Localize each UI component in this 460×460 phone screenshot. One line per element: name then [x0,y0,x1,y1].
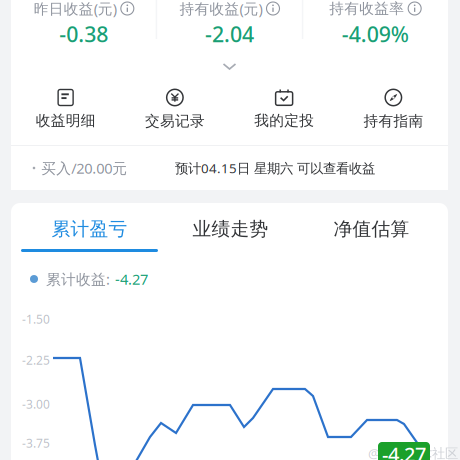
staticText: 昨日收益(元) [34,0,117,18]
button[interactable]: 业绩走势 [160,203,301,252]
staticText: -4.09% [342,20,409,48]
staticText: -4.27 [382,441,426,460]
staticText: 预计04.15日 星期六 可以查看收益 [175,159,375,177]
staticText: @恒生技术社区 [368,444,458,460]
staticText: -4.27 [115,269,148,289]
staticText: 持有收益(元) [179,0,262,18]
staticText: 持有指南 [363,112,423,130]
staticText: 买入/20.00元 [41,158,127,178]
staticText: 业绩走势 [192,217,268,240]
button[interactable]: 交易记录 [120,89,229,128]
staticText: -3.75 [22,435,50,451]
button[interactable]: 累计盈亏 [19,203,160,252]
staticText: 累计盈亏 [51,217,127,240]
staticText: -2.04 [205,20,254,48]
staticText: -0.38 [59,20,108,48]
staticText: 交易记录 [145,112,205,130]
button[interactable]: 净值估算 [301,203,442,252]
staticText: -1.50 [22,311,50,327]
staticText: 净值估算 [333,217,409,240]
button[interactable]: 我的定投 [229,89,339,127]
staticText: -3.00 [22,396,50,412]
button[interactable]: 收益明细 [11,89,120,127]
staticText: 我的定投 [254,111,314,129]
staticText: -2.25 [22,352,50,368]
button[interactable]: 持有指南 [339,89,448,128]
staticText: 累计收益: [46,269,110,289]
staticText: 持有收益率 [329,0,404,17]
staticText: 收益明细 [36,111,96,129]
